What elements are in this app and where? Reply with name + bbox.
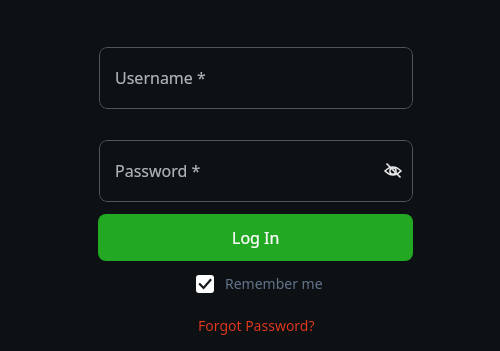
button[interactable]: Username * — [99, 47, 413, 109]
button[interactable]: Forgot Password? — [180, 313, 332, 337]
button[interactable]: Password * — [99, 140, 413, 202]
button[interactable] — [378, 156, 408, 186]
staticText: Log In — [232, 227, 280, 249]
staticText: Username * — [115, 67, 206, 89]
button[interactable]: Log In — [98, 214, 413, 261]
staticText: Password * — [115, 160, 201, 182]
staticText: Forgot Password? — [198, 316, 315, 335]
button[interactable]: Remember me — [196, 274, 323, 293]
staticText: Remember me — [225, 274, 323, 293]
